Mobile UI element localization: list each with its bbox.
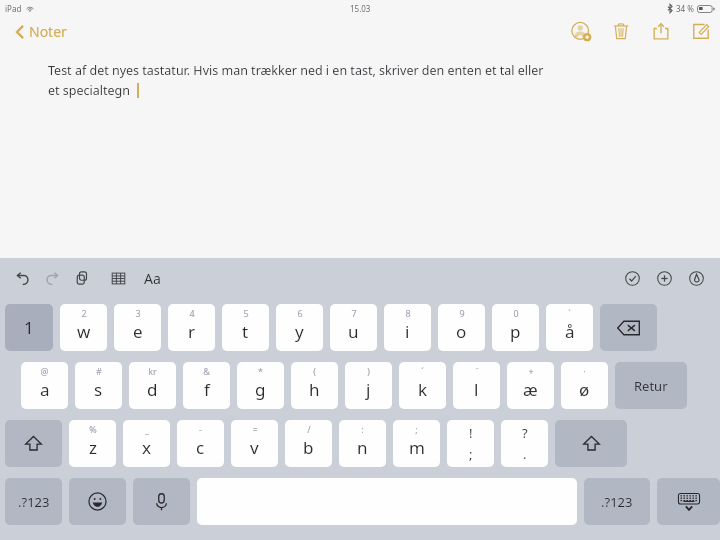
staticText: ´ <box>421 365 424 377</box>
button[interactable]: = <box>231 420 278 467</box>
button[interactable]: ` <box>546 304 593 351</box>
button[interactable]: ( <box>291 362 338 409</box>
staticText: Noter <box>29 22 67 41</box>
staticText: @ <box>40 365 49 377</box>
staticText: y <box>295 320 304 343</box>
button[interactable]: Copy <box>70 266 94 290</box>
staticText: + <box>528 365 534 377</box>
staticText: · <box>583 365 586 377</box>
staticText: n <box>357 436 368 459</box>
button[interactable]: % <box>69 420 116 467</box>
staticText: 8 <box>405 307 411 319</box>
button[interactable]: # <box>75 362 122 409</box>
staticText: l <box>474 378 479 401</box>
button[interactable]: @ <box>21 362 68 409</box>
staticText: . <box>523 445 527 463</box>
staticText: : <box>361 423 364 435</box>
button[interactable]: : <box>339 420 386 467</box>
button[interactable]: & <box>183 362 230 409</box>
button[interactable]: Delete <box>608 18 634 44</box>
staticText: % <box>89 423 97 435</box>
button[interactable]: * <box>237 362 284 409</box>
button[interactable]: ; <box>393 420 440 467</box>
button[interactable]: ) <box>345 362 392 409</box>
button[interactable]: Aa <box>138 264 166 292</box>
button[interactable]: Share <box>648 18 674 44</box>
staticText: x <box>142 436 151 459</box>
staticText: u <box>348 320 359 343</box>
staticText: ø <box>579 378 590 401</box>
staticText: h <box>309 378 320 401</box>
staticText: et specialtegn <box>48 82 130 99</box>
staticText: Test af det nyes tastatur. Hvis man træk… <box>48 62 544 79</box>
staticText: 6 <box>297 307 303 319</box>
button[interactable]: Add attachment <box>652 266 676 290</box>
button[interactable]: 4 <box>168 304 215 351</box>
button[interactable]: kr <box>129 362 176 409</box>
staticText: 1 <box>24 316 34 339</box>
button[interactable]: / <box>285 420 332 467</box>
button[interactable]: Hide keyboard <box>657 478 720 525</box>
button[interactable]: 3 <box>114 304 161 351</box>
staticText: z <box>89 436 97 459</box>
button[interactable]: 1 <box>5 304 53 351</box>
staticText: & <box>203 365 210 377</box>
staticText: iPad <box>5 3 22 14</box>
button[interactable]: Redo <box>40 266 64 290</box>
staticText: f <box>204 378 210 401</box>
staticText: Retur <box>634 377 668 395</box>
staticText: t <box>242 320 249 343</box>
staticText: c <box>196 436 205 459</box>
staticText: .?123 <box>18 493 50 511</box>
staticText: æ <box>523 378 538 401</box>
button[interactable]: 5 <box>222 304 269 351</box>
button[interactable]: .?123 <box>5 478 62 525</box>
button[interactable]: Backspace <box>600 304 657 351</box>
button[interactable]: - <box>177 420 224 467</box>
staticText: r <box>188 320 196 343</box>
staticText: 34 % <box>676 3 694 14</box>
button[interactable]: ´ <box>399 362 446 409</box>
staticText: 9 <box>459 307 465 319</box>
staticText: d <box>147 378 158 401</box>
button[interactable]: + <box>507 362 554 409</box>
staticText: i <box>405 320 410 343</box>
button[interactable]: Emoji <box>69 478 126 525</box>
button[interactable]: Add people <box>568 18 594 44</box>
button[interactable]: .?123 <box>584 478 650 525</box>
button[interactable]: New note <box>688 18 714 44</box>
staticText: s <box>94 378 103 401</box>
staticText: v <box>250 436 259 459</box>
button[interactable]: Table <box>106 266 130 290</box>
staticText: ; <box>415 423 418 435</box>
staticText: # <box>96 365 102 377</box>
button[interactable]: ? <box>501 420 548 467</box>
button[interactable]: 2 <box>60 304 107 351</box>
button[interactable]: 6 <box>276 304 323 351</box>
staticText: k <box>418 378 428 401</box>
button[interactable]: Shift <box>5 420 62 467</box>
staticText: Aa <box>144 269 161 288</box>
button[interactable]: Checklist <box>620 266 644 290</box>
staticText: m <box>409 436 425 459</box>
staticText: j <box>366 378 371 401</box>
button[interactable]: ¨ <box>453 362 500 409</box>
button[interactable]: ! <box>447 420 494 467</box>
button[interactable]: Undo <box>10 266 34 290</box>
button[interactable]: 9 <box>438 304 485 351</box>
button[interactable]: · <box>561 362 608 409</box>
button[interactable]: 8 <box>384 304 431 351</box>
button[interactable]: Dictation <box>133 478 190 525</box>
staticText: g <box>255 378 266 401</box>
button[interactable]: Noter <box>12 17 71 46</box>
button[interactable]: _ <box>123 420 170 467</box>
button[interactable]: Shift <box>555 420 627 467</box>
staticText: p <box>510 320 521 343</box>
button[interactable]: Markup <box>684 266 708 290</box>
button[interactable]: 0 <box>492 304 539 351</box>
staticText: ¨ <box>474 365 480 377</box>
button[interactable]: 7 <box>330 304 377 351</box>
button[interactable]: Retur <box>615 362 687 409</box>
staticText: 3 <box>135 307 141 319</box>
